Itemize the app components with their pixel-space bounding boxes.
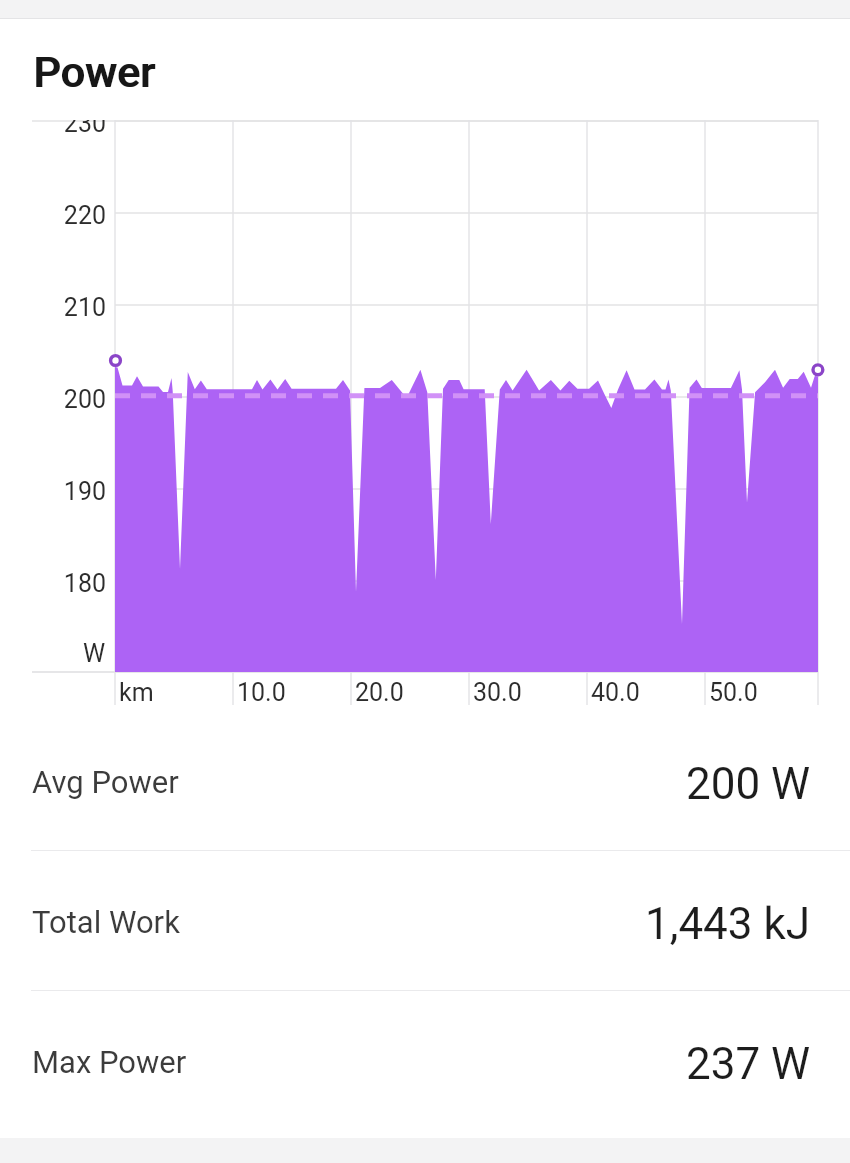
staticText: Max Power xyxy=(32,1044,187,1080)
staticText: 180 xyxy=(63,569,106,598)
button[interactable]: Avg Power xyxy=(0,711,850,850)
staticText: 237 W xyxy=(686,1038,811,1090)
staticText: W xyxy=(83,639,106,668)
staticText: Avg Power xyxy=(32,764,179,800)
button[interactable]: Max Power xyxy=(0,991,850,1130)
button[interactable]: Total Work xyxy=(0,851,850,990)
staticText: 30.0 xyxy=(473,678,522,707)
staticText: 50.0 xyxy=(709,678,758,707)
staticText: 40.0 xyxy=(591,678,640,707)
staticText: Power xyxy=(34,47,156,97)
staticText: 20.0 xyxy=(355,678,404,707)
staticText: 200 W xyxy=(686,758,811,810)
staticText: 10.0 xyxy=(237,678,286,707)
staticText: 190 xyxy=(63,477,106,506)
staticText: Total Work xyxy=(32,904,180,940)
staticText: Power xyxy=(33,47,155,97)
staticText: 230 xyxy=(63,120,106,138)
staticText: 210 xyxy=(63,293,106,322)
staticText: 1,443 kJ xyxy=(645,898,811,950)
staticText: 200 xyxy=(63,385,106,414)
staticText: km xyxy=(119,678,154,707)
staticText: 220 xyxy=(63,201,106,230)
